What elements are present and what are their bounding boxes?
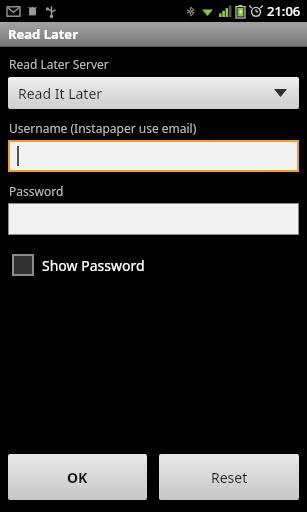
button[interactable]: Show Password — [12, 254, 307, 276]
button[interactable]: OK — [8, 454, 147, 500]
staticText: Read Later — [8, 25, 78, 43]
staticText: Password — [9, 183, 64, 199]
staticText: Username (Instapaper use email) — [9, 120, 197, 136]
button[interactable]: Reset — [159, 454, 299, 500]
staticText: Reset — [211, 468, 248, 487]
button[interactable]: Read It Later — [8, 77, 299, 109]
staticText: Read Later Server — [9, 56, 109, 72]
staticText: 21:06 — [267, 2, 301, 20]
staticText: OK — [67, 468, 88, 487]
button[interactable] — [10, 142, 297, 170]
staticText: Read It Later — [18, 84, 103, 103]
staticText: Show Password — [42, 256, 145, 275]
